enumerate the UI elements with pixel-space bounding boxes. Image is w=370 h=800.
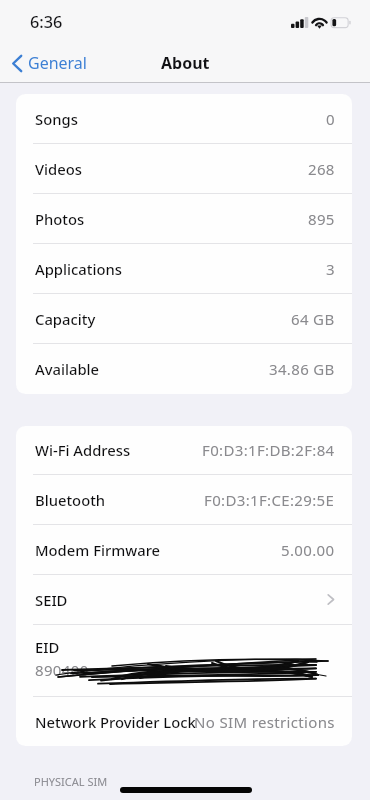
staticText: SEID [35, 590, 68, 610]
staticText: About [161, 52, 210, 74]
staticText: 34.86 GB [269, 359, 335, 379]
staticText: 0 [326, 109, 335, 129]
button[interactable]: Network Provider Lock [16, 697, 352, 746]
button[interactable]: Applications [16, 244, 352, 294]
staticText: Songs [35, 109, 78, 129]
staticText: 64 GB [291, 309, 335, 329]
button[interactable]: Available [16, 344, 352, 394]
button[interactable]: Videos [16, 144, 352, 194]
button[interactable]: Wi-Fi Address [16, 426, 352, 475]
button[interactable]: Songs [16, 94, 352, 144]
staticText: PHYSICAL SIM [34, 774, 108, 789]
button[interactable]: SEID [16, 575, 352, 625]
button[interactable]: Photos [16, 194, 352, 244]
staticText: Capacity [35, 309, 96, 329]
staticText: 895 [308, 209, 335, 229]
staticText: Available [35, 359, 100, 379]
button[interactable]: General [10, 48, 89, 78]
staticText: Photos [35, 209, 85, 229]
staticText: 5.00.00 [281, 540, 335, 560]
staticText: F0:D3:1F:CE:29:5E [204, 490, 335, 510]
staticText: Videos [35, 159, 82, 179]
button[interactable]: Capacity [16, 294, 352, 344]
staticText: Wi-Fi Address [35, 440, 131, 460]
button[interactable]: EID [16, 625, 352, 697]
staticText: F0:D3:1F:DB:2F:84 [202, 440, 335, 460]
staticText: 268 [308, 159, 335, 179]
staticText: 3 [326, 259, 335, 279]
staticText: Applications [35, 259, 122, 279]
staticText: 6:36 [30, 11, 63, 33]
staticText: Modem Firmware [35, 540, 161, 560]
staticText: No SIM restrictions [194, 712, 335, 732]
button[interactable]: Modem Firmware [16, 525, 352, 575]
staticText: EID [35, 637, 60, 657]
staticText: General [28, 52, 87, 74]
staticText: Bluetooth [35, 490, 106, 510]
staticText: Network Provider Lock [35, 712, 196, 732]
button[interactable]: Bluetooth [16, 475, 352, 525]
staticText: 890400 [35, 660, 89, 680]
